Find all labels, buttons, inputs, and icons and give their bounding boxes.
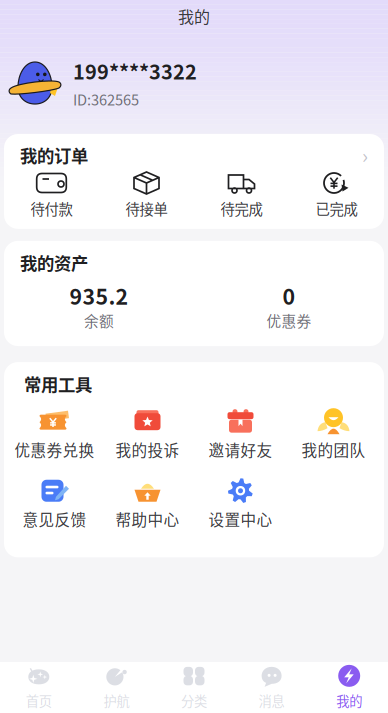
staticText: 我的投诉: [115, 438, 179, 461]
staticText: ID:362565: [73, 88, 139, 110]
button[interactable]: 我的团队: [287, 407, 380, 461]
staticText: 199****3322: [73, 56, 197, 85]
staticText: 优惠券: [266, 310, 311, 331]
button[interactable]: 待完成: [194, 172, 289, 219]
button[interactable]: 待接单: [99, 172, 194, 219]
button[interactable]: 邀请好友: [194, 407, 287, 461]
button[interactable]: 帮助中心: [101, 477, 194, 530]
staticText: 935.2: [69, 280, 128, 311]
staticText: 设置中心: [208, 508, 272, 530]
staticText: 我的团队: [301, 438, 365, 461]
staticText: 邀请好友: [208, 438, 272, 461]
staticText: 我的资产: [20, 250, 88, 275]
button[interactable]: 消息: [233, 659, 310, 713]
staticText: 已完成: [315, 198, 357, 219]
button[interactable]: 我的: [0, 0, 388, 32]
staticText: 我的: [178, 4, 210, 28]
staticText: 优惠券兑换: [14, 438, 94, 461]
button[interactable]: 我的: [310, 659, 388, 713]
staticText: 护航: [103, 691, 129, 710]
button[interactable]: 首页: [0, 659, 78, 713]
button[interactable]: 我的投诉: [101, 407, 194, 461]
staticText: ›: [362, 140, 368, 169]
staticText: 我的: [336, 691, 362, 710]
staticText: 帮助中心: [115, 508, 179, 530]
button[interactable]: 意见反馈: [8, 477, 101, 530]
button[interactable]: 0: [194, 280, 384, 331]
button[interactable]: 待付款: [4, 172, 99, 219]
staticText: 待付款: [30, 198, 72, 219]
button[interactable]: 已完成: [289, 172, 384, 219]
staticText: 常用工具: [24, 371, 92, 396]
staticText: 分类: [181, 691, 207, 710]
staticText: 首页: [26, 691, 52, 710]
button[interactable]: 935.2: [4, 280, 194, 331]
staticText: 消息: [259, 691, 285, 710]
button[interactable]: 设置中心: [194, 477, 287, 530]
staticText: 我的订单: [20, 142, 88, 168]
button[interactable]: 优惠券兑换: [8, 407, 101, 461]
button[interactable]: 分类: [155, 659, 233, 713]
staticText: 待接单: [125, 198, 167, 219]
staticText: 待完成: [220, 198, 262, 219]
staticText: 意见反馈: [22, 508, 86, 530]
staticText: 余额: [84, 310, 114, 331]
button[interactable]: 我的订单: [4, 134, 384, 169]
button[interactable]: 护航: [78, 659, 155, 713]
staticText: 0: [282, 280, 295, 311]
